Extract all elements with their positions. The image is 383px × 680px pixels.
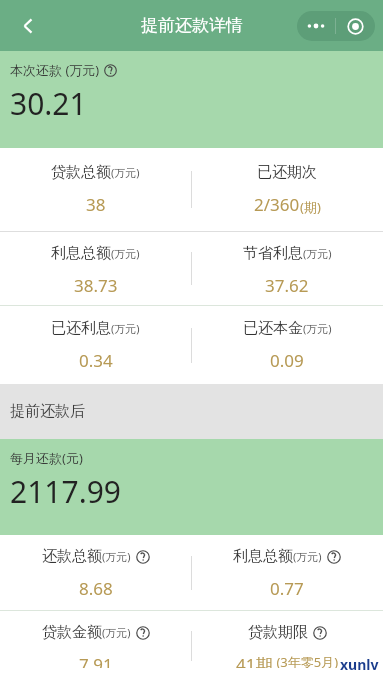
staticText: 0.34 <box>79 349 113 372</box>
staticText: 0.77 <box>270 577 304 598</box>
button[interactable]: 已还本金 <box>191 307 383 384</box>
staticText: 本次还款 (万元) <box>10 61 100 79</box>
staticText: 已还本金 <box>243 319 303 338</box>
staticText: 利息总额 <box>233 547 293 566</box>
staticText: (万元) <box>102 625 131 640</box>
staticText: (万元) <box>102 549 131 564</box>
staticText: 节省利息 <box>243 244 303 263</box>
staticText: (万元) <box>303 321 332 336</box>
staticText: 利息总额 <box>51 244 111 263</box>
staticText: 每月还款(元) <box>10 449 83 467</box>
staticText: 2/360 <box>254 193 300 216</box>
button[interactable]: 已还利息 <box>0 307 191 384</box>
staticText: 提前还款后 <box>10 402 85 421</box>
button[interactable]: Close mini program <box>336 11 375 41</box>
staticText: (万元) <box>111 165 140 180</box>
button[interactable]: Back <box>8 6 48 46</box>
staticText: 贷款金额 <box>42 623 102 642</box>
staticText: 30.21 <box>10 83 87 124</box>
staticText: 37.62 <box>265 274 309 293</box>
staticText: 41期 <box>236 653 273 668</box>
staticText: xunlv <box>340 655 379 674</box>
button[interactable]: 还款总额 <box>0 535 191 610</box>
staticText: 38 <box>86 193 106 216</box>
staticText: 贷款总额 <box>51 163 111 182</box>
button[interactable]: 节省利息 <box>191 232 383 305</box>
staticText: 8.68 <box>79 577 113 598</box>
staticText: 38.73 <box>74 274 118 293</box>
staticText: (期) <box>300 198 321 216</box>
button[interactable]: 贷款金额 <box>0 611 191 680</box>
staticText: (3年零5月) <box>273 653 339 668</box>
staticText: (万元) <box>111 246 140 261</box>
staticText: 已还利息 <box>51 319 111 338</box>
staticText: 贷款期限 <box>248 623 308 642</box>
staticText: (万元) <box>303 246 332 261</box>
staticText: (万元) <box>111 321 140 336</box>
staticText: 提前还款详情 <box>141 15 243 36</box>
button[interactable]: More menu <box>297 11 335 41</box>
button[interactable]: 利息总额 <box>0 232 191 305</box>
button[interactable]: 利息总额 <box>191 535 383 610</box>
button[interactable]: 贷款期限 <box>191 611 383 680</box>
staticText: 0.09 <box>270 349 304 372</box>
staticText: 还款总额 <box>42 547 102 566</box>
staticText: 2117.99 <box>10 471 121 512</box>
button[interactable]: 贷款总额 <box>0 151 191 228</box>
button[interactable]: 已还期次 <box>191 151 383 228</box>
staticText: 已还期次 <box>257 163 317 182</box>
staticText: 7.91 <box>79 653 113 668</box>
staticText: (万元) <box>293 549 322 564</box>
